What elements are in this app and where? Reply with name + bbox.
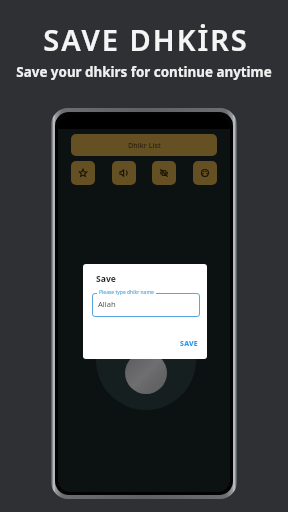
button[interactable]: Favorites — [71, 161, 95, 185]
button[interactable]: Vibration off — [152, 161, 176, 185]
button[interactable]: Dhikr List — [71, 134, 217, 156]
staticText: SAVE — [180, 339, 199, 349]
staticText: Please type dhikr name — [99, 289, 154, 296]
staticText: SAVE DHKİRS — [43, 20, 249, 59]
button[interactable]: Counter — [125, 352, 167, 394]
button[interactable]: SAVE — [175, 335, 204, 353]
staticText: Dhikr List — [128, 140, 161, 150]
staticText: Save — [96, 273, 116, 285]
staticText: Allah — [98, 299, 116, 309]
staticText: Save your dhkirs for continue anytime — [16, 63, 272, 81]
button[interactable]: Theme colour — [193, 161, 217, 185]
button[interactable]: Sound — [112, 161, 136, 185]
